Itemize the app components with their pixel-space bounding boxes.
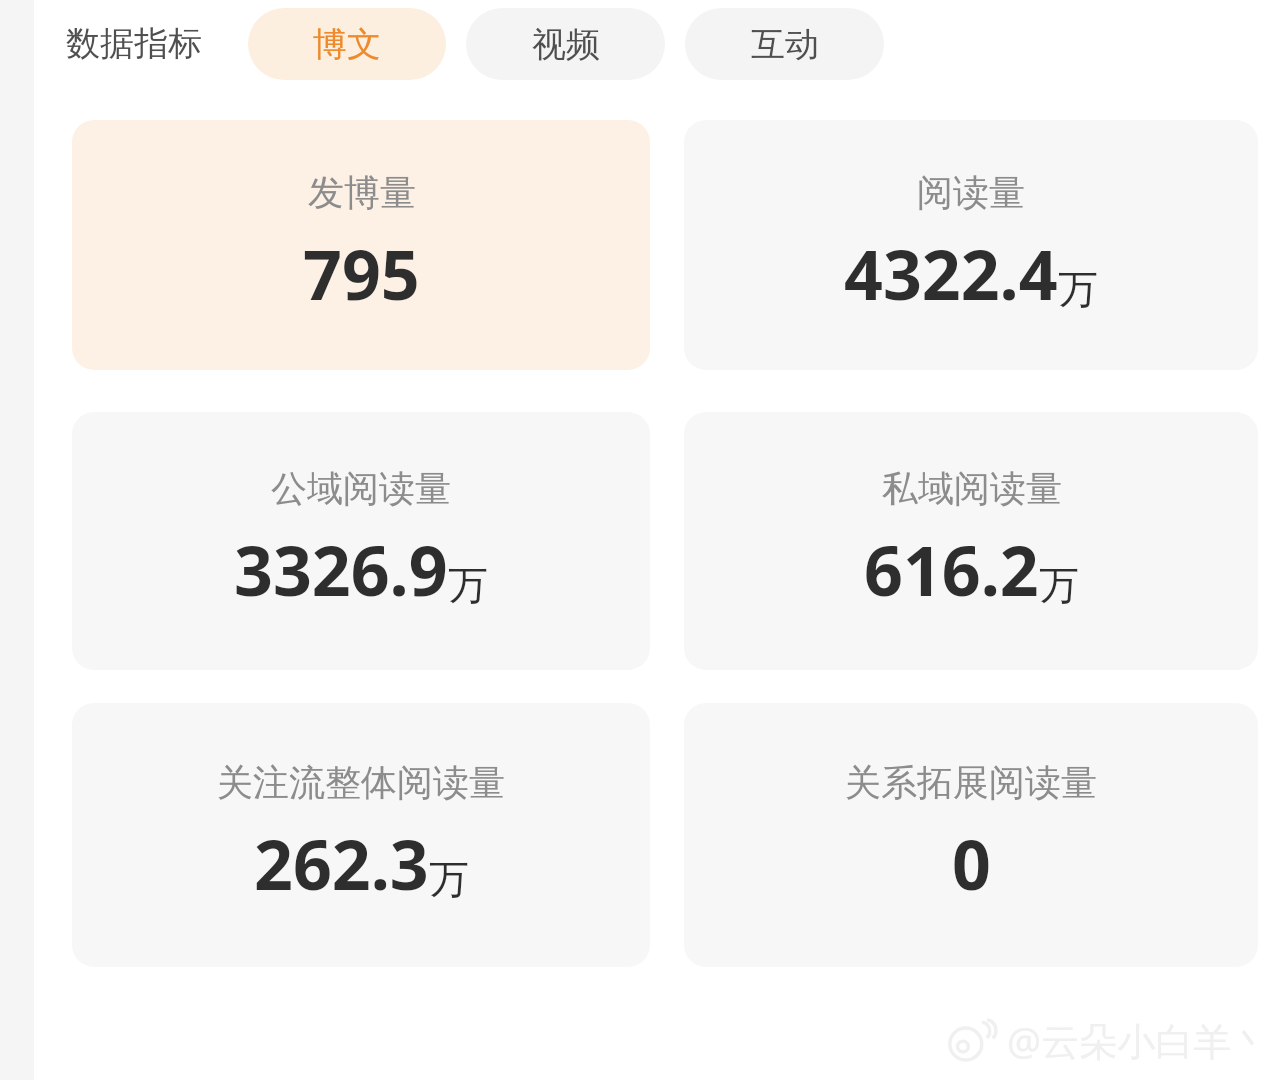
staticText: 关注流整体阅读量 bbox=[217, 760, 505, 805]
staticText: 795 bbox=[303, 227, 420, 320]
button[interactable]: 关系拓展阅读量 bbox=[684, 703, 1258, 967]
staticText: 4322.4 bbox=[844, 227, 1058, 320]
button[interactable]: 数据指标 bbox=[66, 22, 202, 65]
staticText: 262.3 bbox=[254, 817, 429, 910]
button[interactable]: 阅读量 bbox=[684, 120, 1258, 370]
button[interactable]: 博文 bbox=[248, 8, 446, 80]
staticText: 博文 bbox=[313, 23, 381, 66]
button[interactable]: 视频 bbox=[466, 8, 665, 80]
staticText: 万 bbox=[1058, 264, 1098, 314]
button[interactable]: 发博量 bbox=[72, 120, 650, 370]
staticText: 万 bbox=[1039, 560, 1079, 610]
staticText: 阅读量 bbox=[917, 170, 1025, 215]
staticText: 互动 bbox=[751, 23, 819, 66]
staticText: 0 bbox=[952, 817, 991, 910]
button[interactable]: 私域阅读量 bbox=[684, 412, 1258, 670]
staticText: 万 bbox=[429, 854, 469, 904]
staticText: 私域阅读量 bbox=[882, 466, 1062, 511]
staticText: 公域阅读量 bbox=[271, 466, 451, 511]
staticText: 616.2 bbox=[864, 523, 1039, 616]
staticText: 万 bbox=[448, 560, 488, 610]
staticText: 视频 bbox=[532, 23, 600, 66]
staticText: 关系拓展阅读量 bbox=[845, 760, 1097, 805]
staticText: 发博量 bbox=[308, 170, 416, 215]
staticText: @云朵小白羊丶 bbox=[1007, 1014, 1270, 1066]
button[interactable]: 公域阅读量 bbox=[72, 412, 650, 670]
button[interactable]: 互动 bbox=[685, 8, 884, 80]
staticText: 数据指标 bbox=[66, 22, 202, 65]
staticText: 3326.9 bbox=[234, 523, 448, 616]
button[interactable]: 关注流整体阅读量 bbox=[72, 703, 650, 967]
